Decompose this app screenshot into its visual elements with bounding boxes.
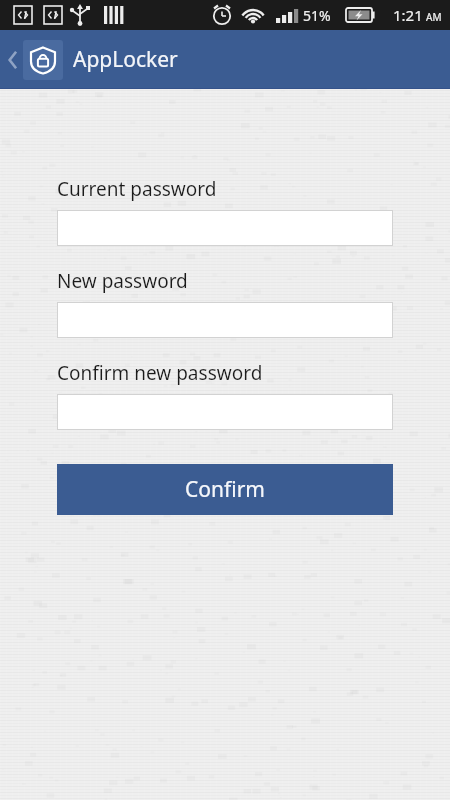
staticText: AM — [426, 10, 442, 24]
button[interactable]: New password — [57, 302, 393, 338]
staticText: Confirm new password — [57, 360, 263, 386]
button[interactable]: Navigate up, AppLocker — [0, 30, 189, 89]
staticText: 1:21 — [393, 5, 423, 25]
staticText: New password — [57, 268, 188, 294]
button[interactable]: Current password — [57, 210, 393, 246]
staticText: Confirm — [185, 475, 265, 504]
staticText: Current password — [57, 176, 217, 202]
staticText: 51% — [303, 6, 331, 25]
button[interactable]: Confirm new password — [57, 394, 393, 430]
button[interactable]: Confirm — [57, 464, 393, 515]
staticText: AppLocker — [73, 45, 178, 74]
